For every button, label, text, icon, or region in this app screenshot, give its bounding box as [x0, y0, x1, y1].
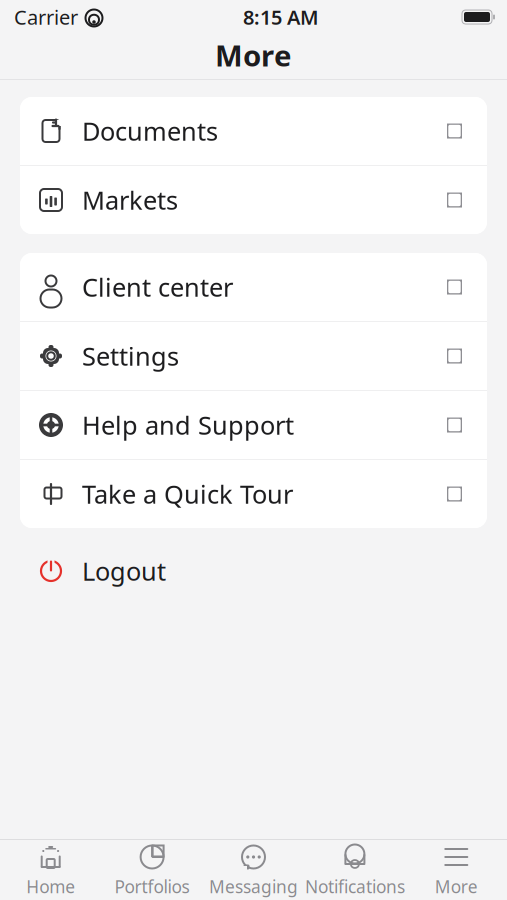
staticText: Notifications	[305, 875, 405, 898]
button[interactable]: Logout	[20, 540, 487, 602]
staticText: Settings	[82, 339, 179, 373]
button[interactable]: Settings	[20, 322, 487, 390]
staticText: Documents	[82, 114, 218, 148]
button[interactable]: Client center	[20, 253, 487, 321]
staticText: Home	[26, 875, 75, 898]
button[interactable]: Markets	[20, 166, 487, 234]
staticText: Take a Quick Tour	[82, 477, 293, 511]
staticText: More	[215, 35, 292, 74]
button[interactable]: Messaging	[203, 834, 304, 900]
button[interactable]: Take a Quick Tour	[20, 460, 487, 528]
staticText: Logout	[82, 554, 166, 588]
button[interactable]: Help and Support	[20, 391, 487, 459]
staticText: Help and Support	[82, 408, 294, 442]
staticText: Portfolios	[115, 875, 190, 898]
button[interactable]: More	[406, 834, 507, 900]
staticText: Client center	[82, 270, 233, 304]
staticText: Messaging	[209, 875, 298, 898]
staticText: Markets	[82, 183, 178, 217]
button[interactable]: Documents	[20, 97, 487, 165]
staticText: Carrier	[14, 4, 78, 30]
staticText: 8:15 AM	[243, 4, 319, 30]
button[interactable]: Portfolios	[101, 834, 203, 900]
button[interactable]: Home	[0, 834, 101, 900]
staticText: More	[435, 875, 478, 898]
button[interactable]: Notifications	[304, 834, 406, 900]
